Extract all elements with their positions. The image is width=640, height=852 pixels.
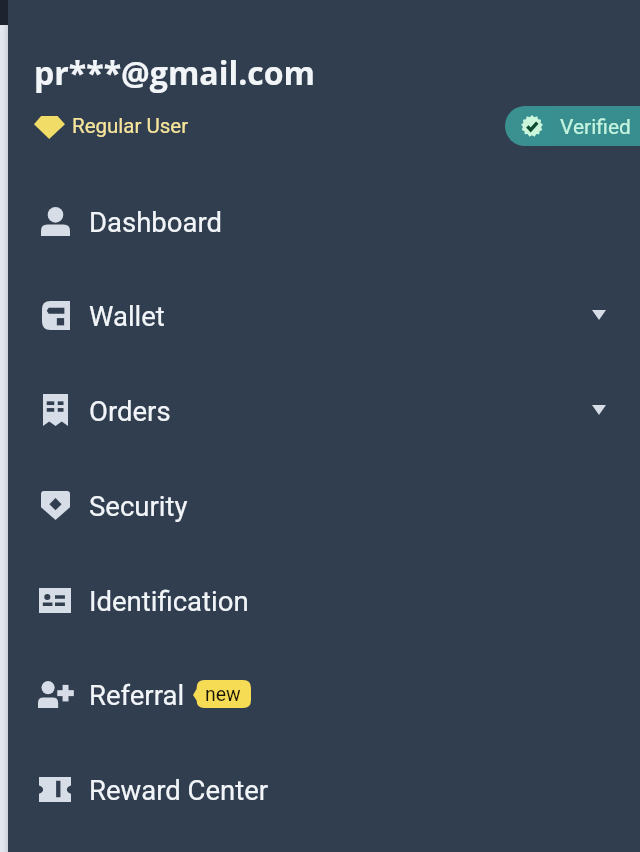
button[interactable]: Referral bbox=[8, 647, 640, 741]
staticText: Wallet bbox=[89, 300, 165, 332]
other: Expand Wallet bbox=[592, 310, 606, 320]
button[interactable]: Verified bbox=[505, 106, 640, 146]
button[interactable]: Security bbox=[8, 458, 640, 552]
staticText: Reward Center bbox=[89, 774, 269, 806]
staticText: Verified bbox=[560, 115, 631, 140]
other: Expand Orders bbox=[592, 405, 606, 415]
staticText: Identification bbox=[89, 585, 249, 617]
button[interactable]: Dashboard bbox=[8, 174, 640, 268]
button[interactable]: Identification bbox=[8, 553, 640, 647]
staticText: Dashboard bbox=[89, 206, 223, 238]
staticText: pr***@gmail.com bbox=[34, 51, 315, 95]
staticText: Referral bbox=[89, 679, 185, 711]
button[interactable]: Orders bbox=[8, 363, 640, 457]
staticText: Orders bbox=[89, 395, 171, 427]
staticText: Regular User bbox=[72, 114, 189, 138]
staticText: new bbox=[205, 683, 241, 706]
staticText: Security bbox=[89, 490, 188, 522]
button[interactable]: Wallet bbox=[8, 268, 640, 362]
button[interactable]: Reward Center bbox=[8, 742, 640, 836]
